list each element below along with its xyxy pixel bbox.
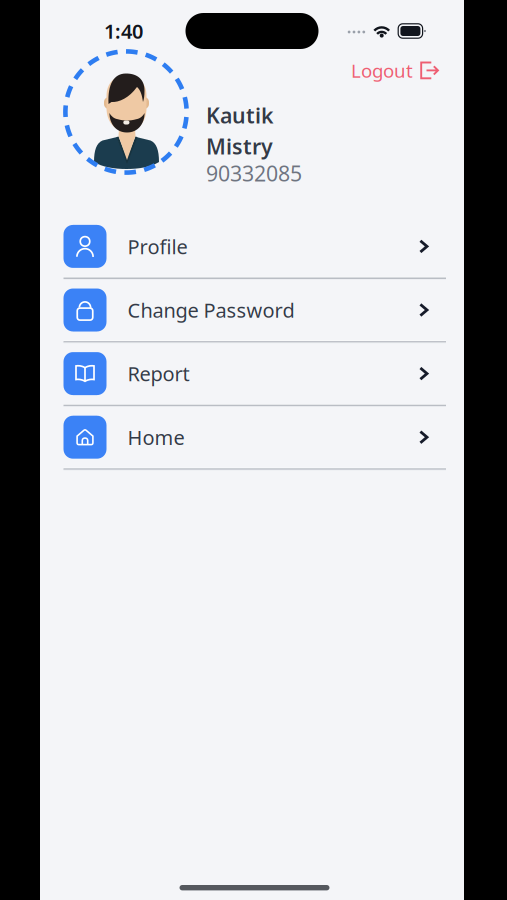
staticText: Report <box>127 360 189 387</box>
staticText: Mistry <box>206 132 273 160</box>
staticText: Change Password <box>127 297 294 323</box>
staticText: Logout <box>351 58 413 83</box>
staticText: 90332085 <box>206 159 302 187</box>
button[interactable]: Home <box>40 407 464 470</box>
staticText: Profile <box>127 233 187 260</box>
button[interactable]: Report <box>40 343 464 407</box>
button[interactable]: Profile <box>40 216 464 280</box>
staticText: 1:40 <box>104 18 143 44</box>
button[interactable]: Logout <box>347 55 464 86</box>
button[interactable]: Change Password <box>40 280 464 343</box>
staticText: Kautik <box>206 101 274 129</box>
staticText: Home <box>127 424 184 450</box>
